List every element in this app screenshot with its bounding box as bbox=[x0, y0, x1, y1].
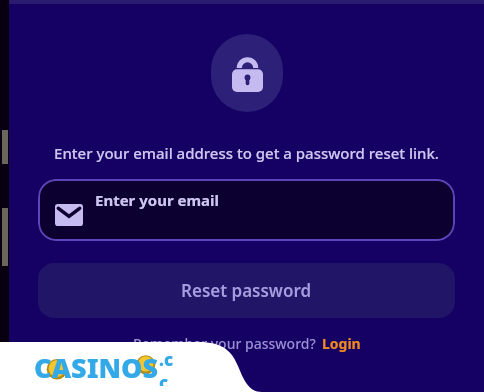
staticText: Enter your email bbox=[95, 190, 220, 210]
button[interactable]: Login bbox=[322, 334, 361, 353]
button[interactable]: Email bbox=[38, 179, 455, 241]
button[interactable]: Reset password bbox=[38, 263, 455, 318]
staticText: CASINOS bbox=[34, 349, 159, 386]
staticText: Reset password bbox=[181, 279, 312, 302]
staticText: Remember your password? bbox=[133, 334, 316, 353]
other: Email bbox=[55, 204, 83, 226]
staticText: Enter your email address to get a passwo… bbox=[15, 143, 478, 163]
staticText: .cc bbox=[159, 348, 182, 386]
staticText: Login bbox=[322, 334, 361, 353]
